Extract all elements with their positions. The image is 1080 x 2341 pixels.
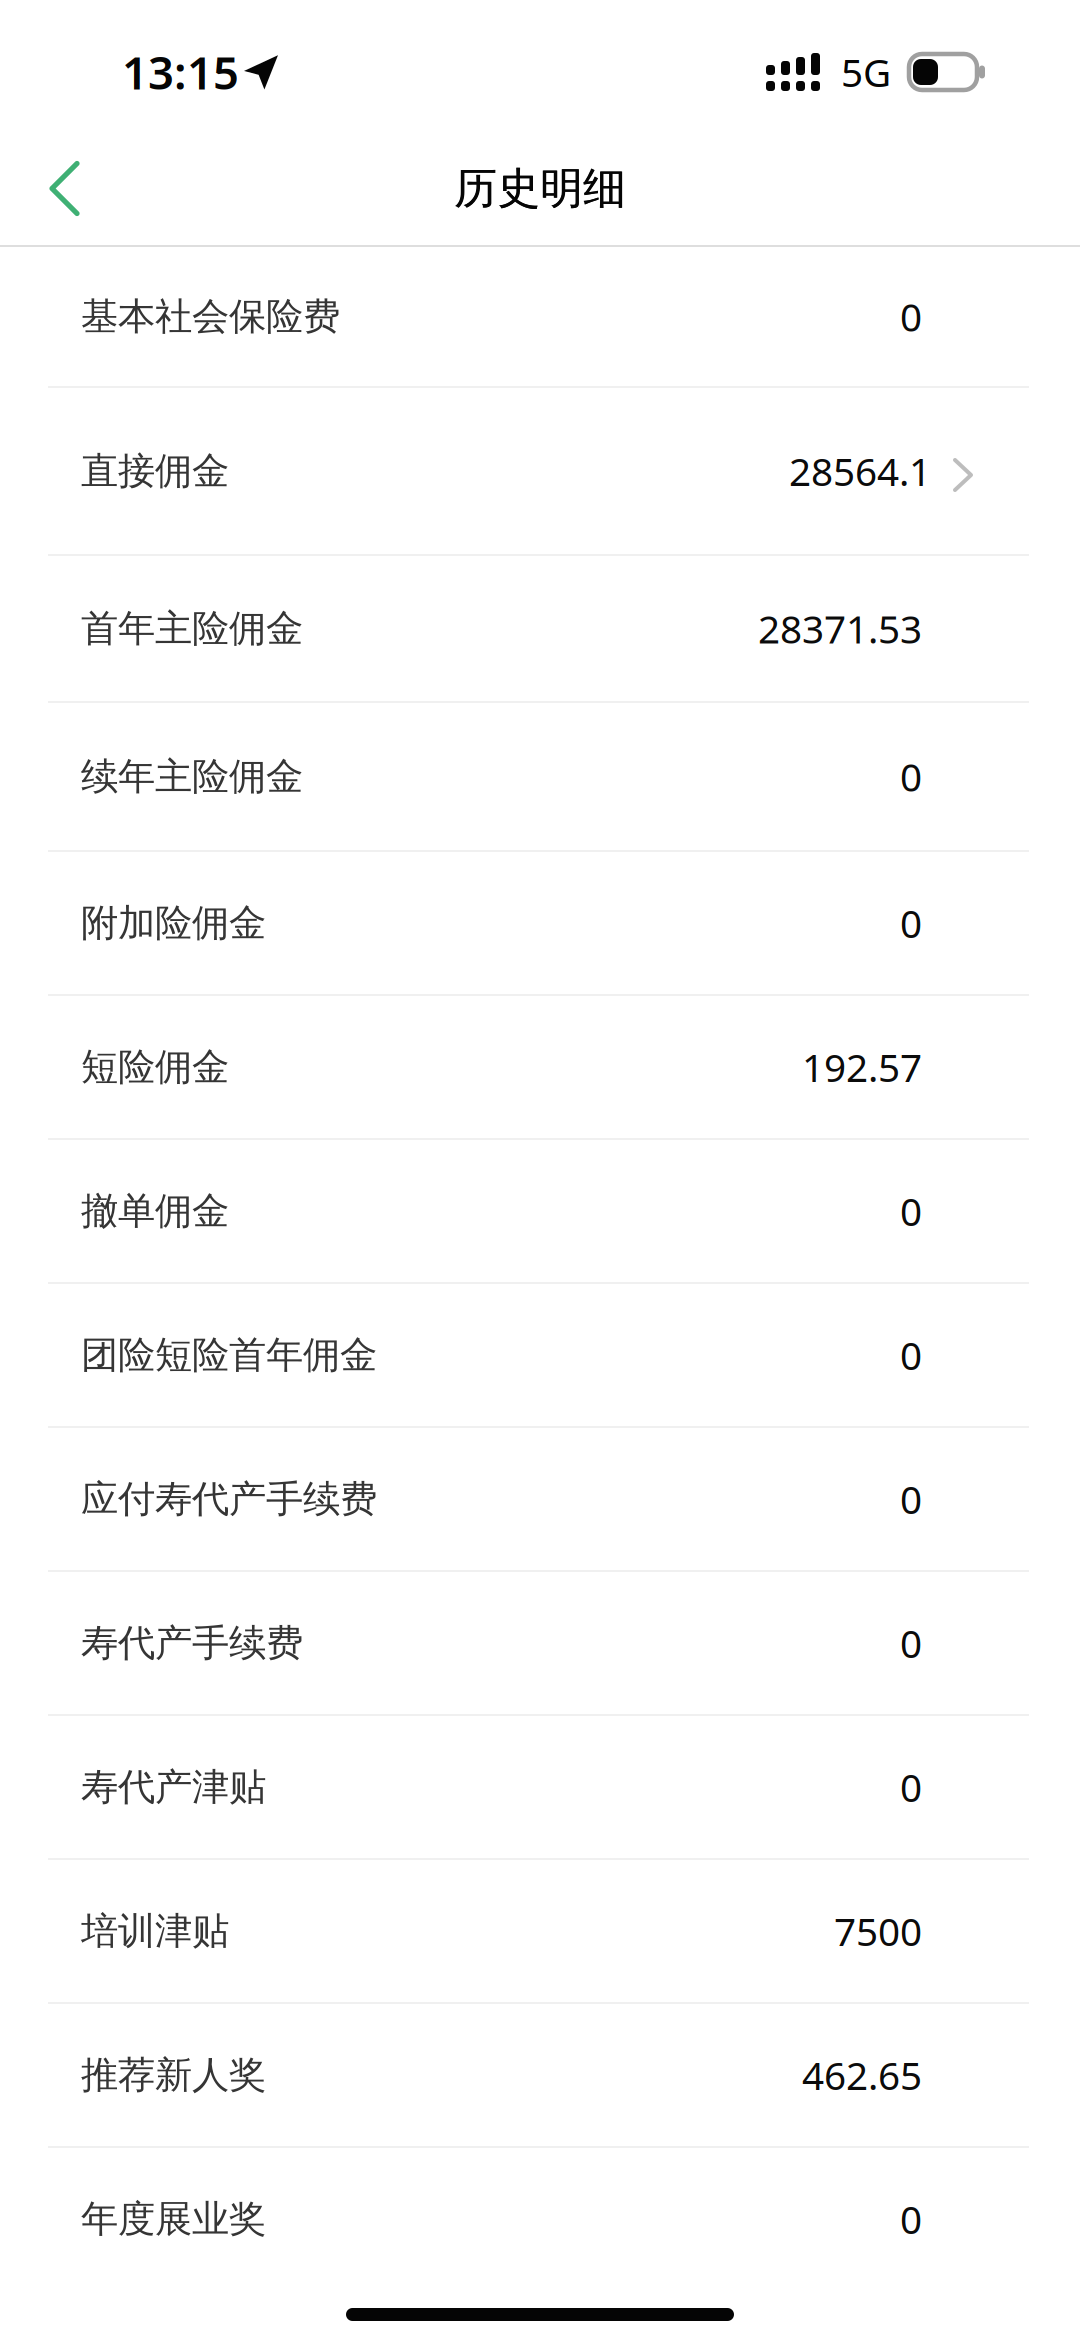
staticText: 5G xyxy=(841,46,891,98)
staticText: 续年主险佣金 xyxy=(81,754,303,799)
staticText: 应付寿代产手续费 xyxy=(81,1476,377,1522)
staticText: 团险短险首年佣金 xyxy=(81,1332,377,1378)
button[interactable]: 续年主险佣金 xyxy=(0,703,1080,850)
staticText: 培训津贴 xyxy=(81,1908,229,1954)
button[interactable]: 寿代产津贴 xyxy=(0,1716,1080,1858)
staticText: 直接佣金 xyxy=(81,448,229,494)
button[interactable]: 首年主险佣金 xyxy=(0,556,1080,701)
staticText: 462.65 xyxy=(802,2049,922,2101)
staticText: 推荐新人奖 xyxy=(81,2052,266,2098)
staticText: 7500 xyxy=(834,1905,922,1957)
button[interactable]: 培训津贴 xyxy=(0,1860,1080,2002)
staticText: 13:15 xyxy=(122,42,239,102)
staticText: 192.57 xyxy=(802,1041,922,1093)
button[interactable]: 附加险佣金 xyxy=(0,852,1080,994)
staticText: 28564.1 xyxy=(789,445,931,497)
staticText: 0 xyxy=(900,1473,922,1525)
staticText: 首年主险佣金 xyxy=(81,606,303,651)
staticText: 0 xyxy=(900,751,922,802)
staticText: 28371.53 xyxy=(758,603,922,654)
staticText: 基本社会保险费 xyxy=(81,294,340,339)
staticText: 0 xyxy=(900,1329,922,1381)
staticText: 0 xyxy=(900,1617,922,1669)
button[interactable]: 基本社会保险费 xyxy=(0,247,1080,386)
button[interactable]: 短险佣金 xyxy=(0,996,1080,1138)
staticText: 寿代产津贴 xyxy=(81,1764,266,1810)
staticText: 历史明细 xyxy=(455,162,627,215)
button[interactable]: 应付寿代产手续费 xyxy=(0,1428,1080,1570)
staticText: 年度展业奖 xyxy=(81,2196,266,2242)
staticText: 0 xyxy=(900,2193,922,2245)
staticText: 0 xyxy=(900,897,922,949)
staticText: 短险佣金 xyxy=(81,1044,229,1090)
staticText: 0 xyxy=(900,291,922,342)
staticText: 寿代产手续费 xyxy=(81,1620,303,1666)
staticText: 附加险佣金 xyxy=(81,900,266,946)
staticText: 0 xyxy=(900,1185,922,1237)
button[interactable]: Back xyxy=(22,133,107,243)
button[interactable]: 寿代产手续费 xyxy=(0,1572,1080,1714)
button[interactable]: 推荐新人奖 xyxy=(0,2004,1080,2146)
button[interactable]: 撤单佣金 xyxy=(0,1140,1080,1282)
staticText: 历史明细 xyxy=(454,162,626,215)
staticText: 撤单佣金 xyxy=(81,1188,229,1234)
button[interactable]: 年度展业奖 xyxy=(0,2148,1080,2290)
staticText: 0 xyxy=(900,1761,922,1813)
button[interactable]: 直接佣金 xyxy=(0,388,1080,554)
button[interactable]: 团险短险首年佣金 xyxy=(0,1284,1080,1426)
